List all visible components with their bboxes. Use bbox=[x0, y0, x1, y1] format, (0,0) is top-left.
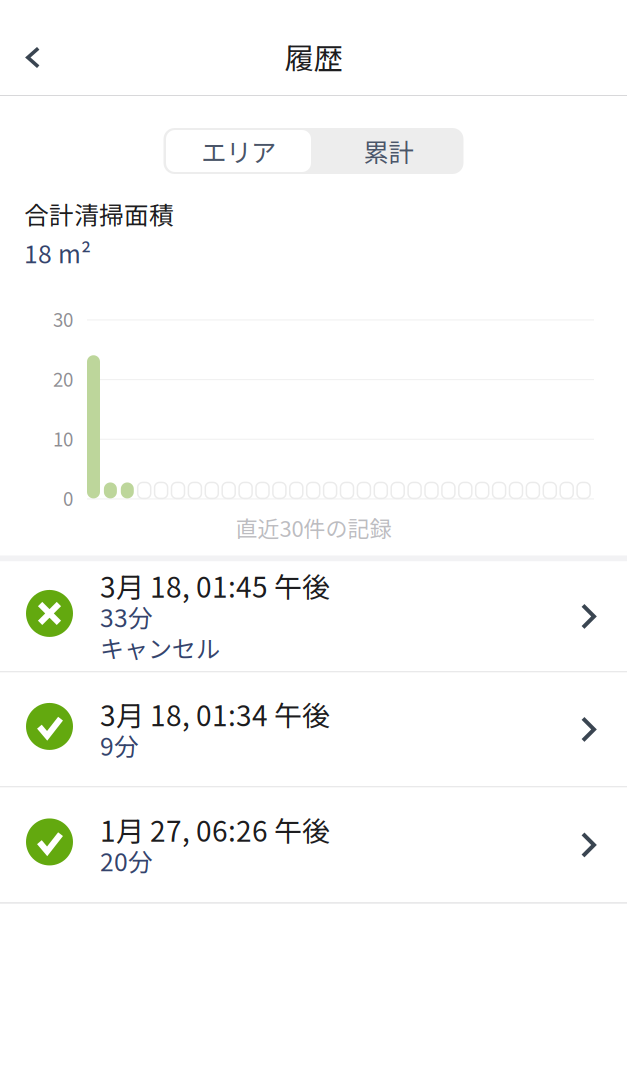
button[interactable]: 3月 18, 01:34 午後 bbox=[0, 672, 627, 786]
button[interactable]: エリア bbox=[163, 128, 313, 174]
button[interactable]: 1月 27, 06:26 午後 bbox=[0, 787, 627, 902]
staticText: 3月 18, 01:45 午後 bbox=[100, 565, 330, 606]
staticText: 直近30件の記録 bbox=[235, 511, 391, 543]
staticText: 33分 bbox=[100, 599, 153, 634]
staticText: エリア bbox=[201, 133, 276, 169]
staticText: 10 bbox=[53, 425, 73, 452]
button[interactable]: Back bbox=[11, 31, 55, 83]
staticText: 20分 bbox=[100, 843, 153, 878]
button[interactable]: 累計 bbox=[313, 128, 463, 174]
staticText: 20 bbox=[53, 365, 73, 392]
staticText: キャンセル bbox=[100, 630, 220, 665]
staticText: 履歴 bbox=[284, 35, 342, 78]
staticText: 3月 18, 01:34 午後 bbox=[100, 694, 330, 734]
staticText: 9分 bbox=[100, 727, 139, 763]
staticText: 18 m² bbox=[24, 235, 91, 270]
staticText: 0 bbox=[63, 484, 73, 511]
staticText: 30 bbox=[53, 305, 73, 332]
staticText: 合計清掃面積 bbox=[24, 196, 174, 232]
staticText: 累計 bbox=[363, 133, 413, 169]
staticText: 1月 27, 06:26 午後 bbox=[100, 809, 330, 850]
button[interactable]: 3月 18, 01:45 午後 bbox=[0, 561, 627, 671]
